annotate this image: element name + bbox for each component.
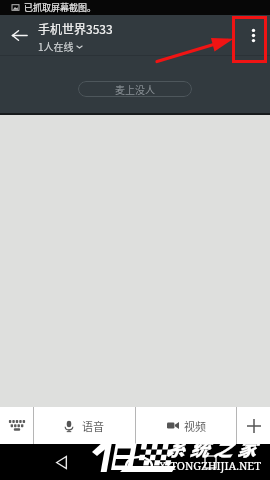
button[interactable]: 语音 bbox=[34, 407, 135, 444]
staticText: 系统之家 bbox=[166, 434, 261, 462]
button[interactable]: 视频 bbox=[136, 407, 236, 444]
button[interactable]: Back bbox=[50, 451, 72, 473]
button[interactable]: 麦上没人 bbox=[78, 81, 192, 97]
staticText: 语音 bbox=[82, 418, 104, 434]
staticText: 视频 bbox=[184, 418, 206, 434]
staticText: 1人在线 bbox=[38, 39, 74, 53]
button[interactable]: Keyboard bbox=[0, 407, 33, 444]
button[interactable]: More options bbox=[236, 15, 270, 55]
button[interactable]: Recent apps bbox=[199, 451, 221, 473]
button[interactable]: Add bbox=[237, 407, 270, 444]
staticText: XITONGZHIJIA.NET bbox=[159, 458, 261, 473]
button[interactable]: Back bbox=[0, 15, 38, 55]
staticText: 手机世界3533 bbox=[38, 20, 113, 37]
staticText: 已抓取屏幕截图。 bbox=[24, 1, 97, 14]
staticText: 麦上没人 bbox=[115, 82, 155, 96]
